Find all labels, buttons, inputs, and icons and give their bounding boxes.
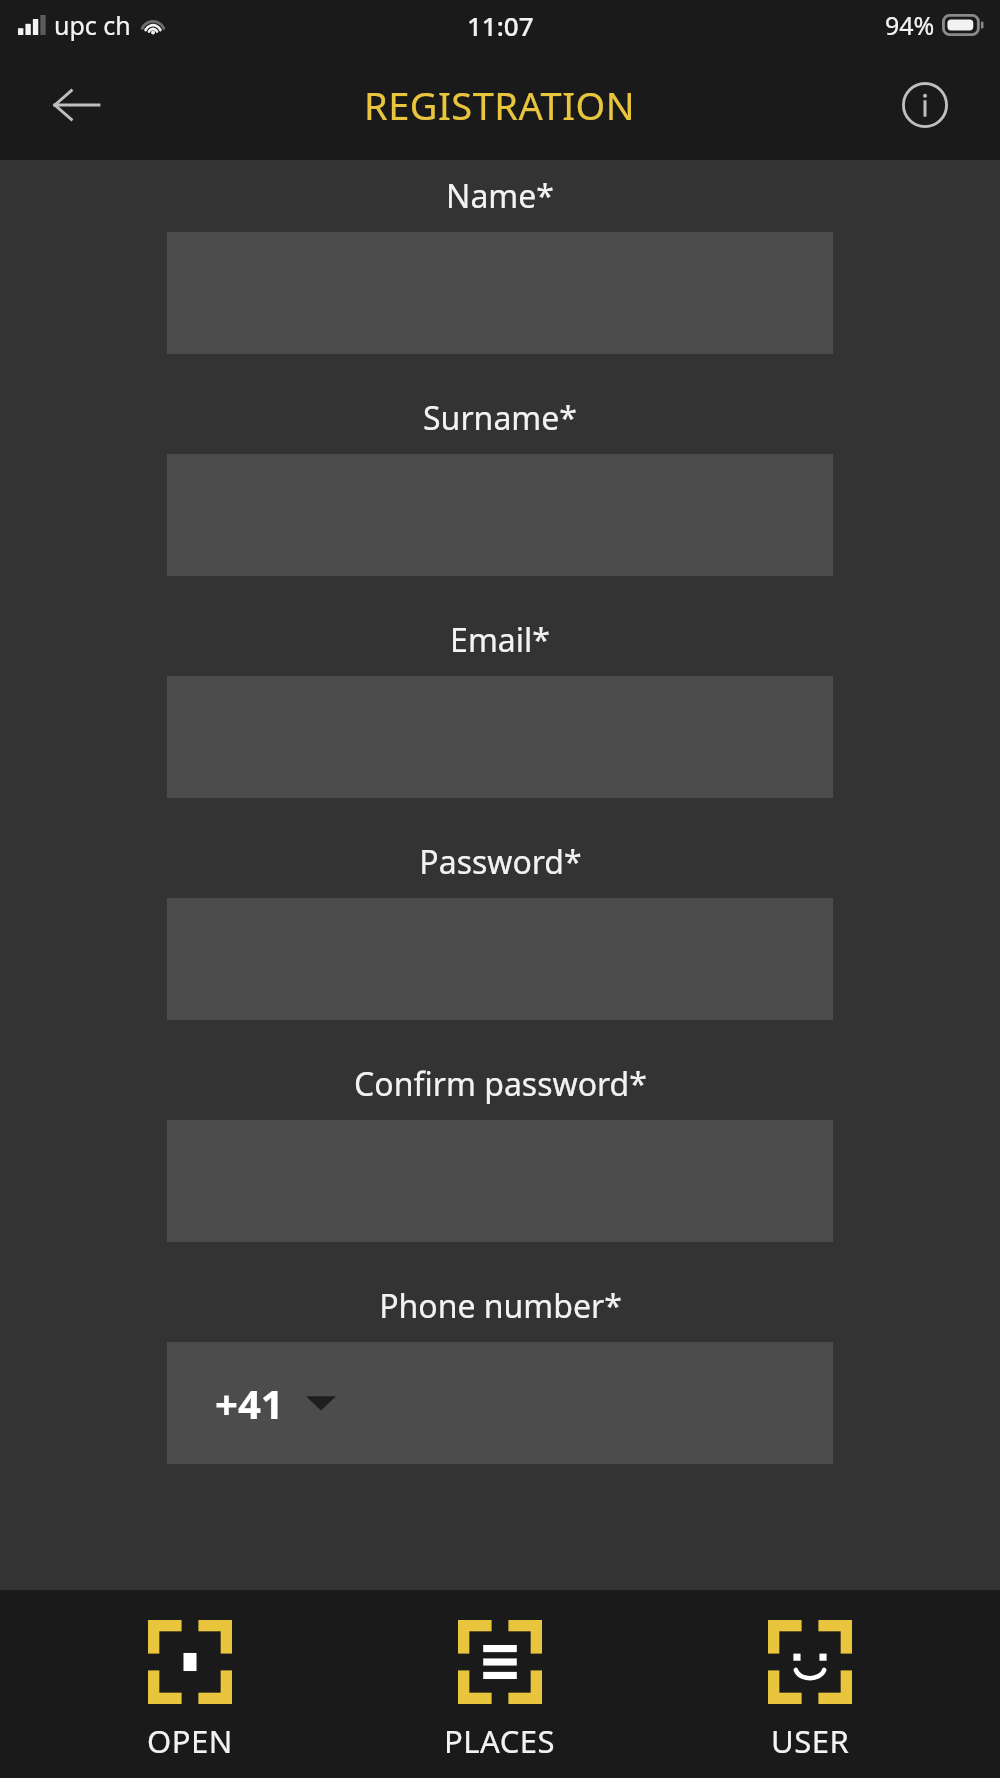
staticText: Name* bbox=[446, 174, 554, 218]
staticText: Confirm password* bbox=[354, 1062, 647, 1106]
staticText: 11:07 bbox=[467, 8, 534, 43]
staticText: upc ch bbox=[54, 8, 131, 42]
staticText: Phone number* bbox=[379, 1284, 622, 1328]
staticText: +41 bbox=[215, 1376, 284, 1430]
button[interactable]: Back bbox=[30, 59, 122, 151]
staticText: USER bbox=[771, 1720, 850, 1762]
staticText: 94% bbox=[885, 8, 935, 42]
button[interactable]: PLACES bbox=[380, 1590, 620, 1778]
staticText: OPEN bbox=[147, 1720, 233, 1762]
button[interactable]: USER bbox=[690, 1590, 930, 1778]
button[interactable]: Information bbox=[882, 62, 968, 148]
staticText: REGISTRATION bbox=[364, 79, 636, 131]
staticText: Email* bbox=[450, 618, 550, 662]
button[interactable]: +41 bbox=[167, 1342, 833, 1464]
staticText: Surname* bbox=[423, 396, 577, 440]
staticText: PLACES bbox=[444, 1720, 556, 1762]
button[interactable]: OPEN bbox=[70, 1590, 310, 1778]
staticText: Password* bbox=[419, 840, 582, 884]
